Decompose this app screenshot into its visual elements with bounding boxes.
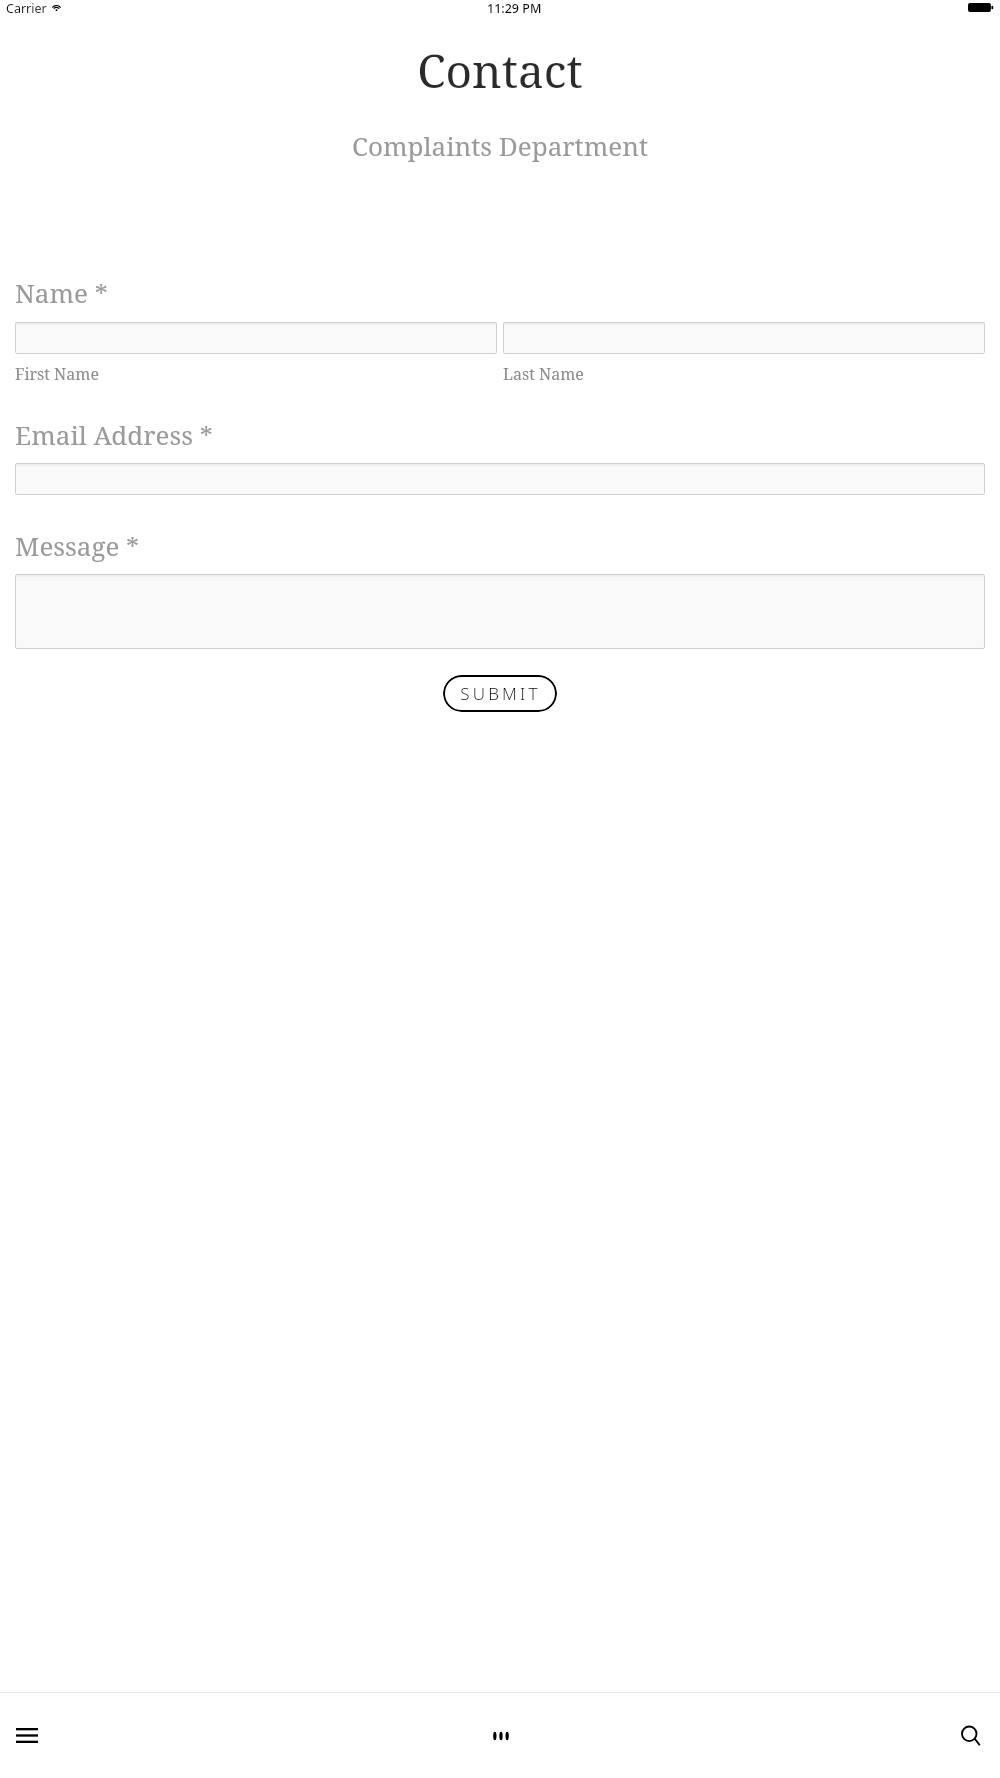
button[interactable]: Last Name input xyxy=(503,322,985,354)
button[interactable]: First Name input xyxy=(15,322,497,354)
staticText: SUBMIT xyxy=(460,682,541,705)
staticText: Last Name xyxy=(503,363,584,385)
staticText: Complaints Department xyxy=(0,128,1000,163)
button[interactable]: SUBMIT xyxy=(443,675,557,712)
staticText: 11:29 PM xyxy=(487,0,542,15)
staticText: Email Address * xyxy=(15,417,213,452)
staticText: Carrier xyxy=(6,0,47,15)
button[interactable]: Menu xyxy=(0,1693,334,1778)
button[interactable]: Message input xyxy=(15,574,985,649)
staticText: Message * xyxy=(15,528,140,563)
button[interactable]: More options xyxy=(334,1693,667,1778)
staticText: First Name xyxy=(15,363,100,385)
staticText: Contact xyxy=(0,39,1000,102)
button[interactable]: Search xyxy=(667,1693,1000,1778)
button[interactable]: Email Address input xyxy=(15,463,985,495)
staticText: Name * xyxy=(15,275,108,310)
